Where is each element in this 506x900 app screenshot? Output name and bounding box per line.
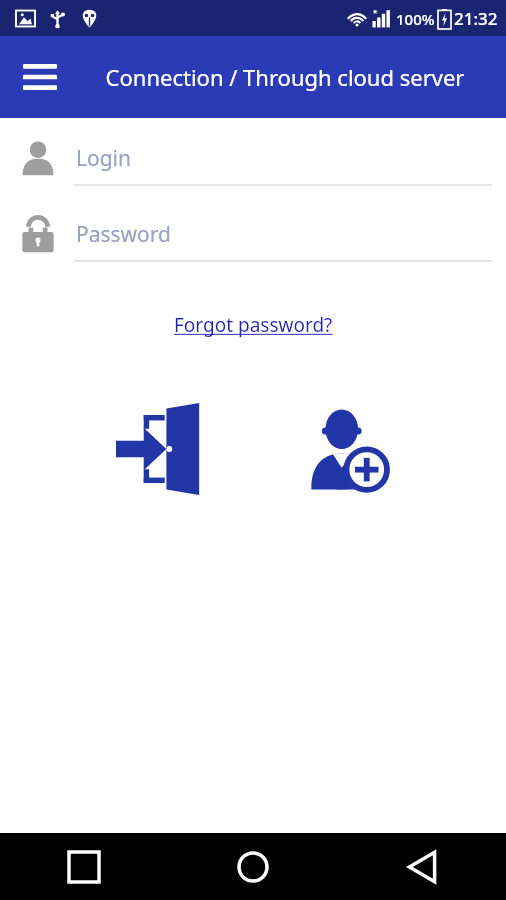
staticText: 100%	[396, 9, 435, 29]
button[interactable]: Recent apps	[0, 833, 168, 900]
button[interactable]: Login	[0, 132, 506, 184]
staticText: Connection / Through cloud server	[80, 62, 490, 92]
button[interactable]: Password	[0, 208, 506, 260]
button[interactable]: Back	[337, 833, 506, 900]
button[interactable]: Forgot password?	[166, 308, 341, 342]
button[interactable]: Open navigation menu	[8, 45, 72, 109]
button[interactable]: Sign in	[63, 394, 253, 504]
staticText: Login	[76, 144, 132, 173]
button[interactable]: Register new user	[253, 394, 443, 504]
staticText: Forgot password?	[174, 312, 333, 338]
staticText: 21:32	[454, 7, 498, 30]
staticText: Password	[76, 220, 171, 249]
button[interactable]: Home	[168, 833, 337, 900]
